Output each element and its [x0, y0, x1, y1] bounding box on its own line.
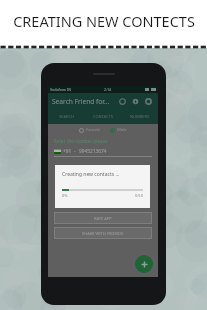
button[interactable]: Chat [119, 98, 126, 105]
staticText: CREATING NEW CONTECTS [13, 11, 195, 31]
button[interactable]: Add contact [135, 255, 153, 273]
staticText: - [74, 148, 76, 155]
button[interactable]: RATE APP [54, 212, 152, 224]
button[interactable]: Info [132, 98, 139, 105]
button[interactable]: Settings [145, 98, 152, 105]
button[interactable]: NUMBERS [121, 109, 158, 124]
staticText: 0:50 [135, 193, 143, 198]
staticText: Creating new contacts ... [62, 171, 120, 178]
staticText: Female [86, 127, 101, 133]
staticText: 9945213674 [79, 148, 107, 155]
staticText: SHARE WITH FRIENDS [82, 231, 124, 236]
staticText: CONTACTS [93, 114, 113, 119]
staticText: Enter the number please [54, 138, 108, 144]
staticText: 2:14 [104, 87, 112, 92]
staticText: NUMBERS [130, 114, 150, 119]
button[interactable]: SEARCH [48, 109, 84, 124]
button[interactable]: CONTACTS [84, 109, 121, 124]
staticText: RATE APP [94, 216, 112, 221]
staticText: SEARCH [59, 114, 74, 119]
staticText: +91 [63, 148, 72, 155]
staticText: Search Friend for... [52, 97, 110, 106]
staticText: 0% [62, 193, 68, 198]
staticText: Male [117, 127, 127, 133]
button[interactable]: Male [110, 127, 127, 133]
button[interactable]: Female [79, 127, 101, 133]
staticText: Vodafone IN [50, 87, 72, 92]
button[interactable]: SHARE WITH FRIENDS [54, 227, 152, 239]
